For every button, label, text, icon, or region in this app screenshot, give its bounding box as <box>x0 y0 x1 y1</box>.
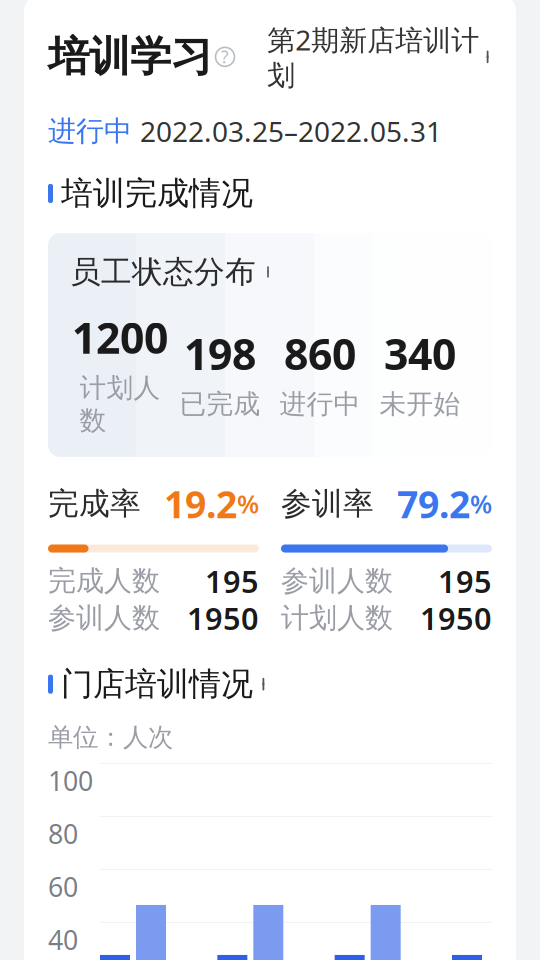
staticText: 完成人数 <box>48 564 160 598</box>
button[interactable]: 第2期新店培训计划 <box>267 21 492 93</box>
staticText: 进行中 <box>48 114 132 148</box>
staticText: 2022.03.25–2022.05.31 <box>140 113 442 150</box>
staticText: 100 <box>48 763 93 798</box>
staticText: 195 <box>438 561 492 601</box>
staticText: 培训完成情况 <box>61 174 253 213</box>
staticText: 完成率 <box>48 485 141 523</box>
staticText: 1950 <box>187 598 259 638</box>
staticText: 19.2 <box>164 479 237 529</box>
staticText: 已完成 <box>179 388 260 421</box>
staticText: 门店培训情况 <box>61 664 253 704</box>
staticText: 1950 <box>420 598 492 638</box>
staticText: 计划人数 <box>281 601 393 635</box>
staticText: 参训人数 <box>48 601 160 635</box>
staticText: 60 <box>48 869 78 904</box>
staticText: 计划人数 <box>79 371 160 437</box>
staticText: 第2期新店培训计划 <box>267 21 479 93</box>
staticText: % <box>237 487 259 520</box>
staticText: 80 <box>48 816 78 851</box>
button[interactable]: 门店培训情况 <box>48 664 268 704</box>
staticText: 参训率 <box>281 485 374 523</box>
staticText: 195 <box>205 561 259 601</box>
staticText: 培训学习 <box>48 31 212 82</box>
staticText: 340 <box>384 325 456 382</box>
staticText: 进行中 <box>279 388 360 421</box>
staticText: 198 <box>184 325 256 382</box>
staticText: 员工状态分布 <box>70 253 256 291</box>
staticText: 单位：人次 <box>48 722 173 753</box>
staticText: ? <box>221 45 229 68</box>
staticText: 参训人数 <box>281 564 393 598</box>
staticText: 860 <box>284 325 356 382</box>
staticText: 1200 <box>72 309 168 365</box>
staticText: 79.2 <box>397 479 470 529</box>
staticText: % <box>470 487 492 520</box>
button[interactable]: 说明 <box>212 44 238 70</box>
staticText: 40 <box>48 922 78 957</box>
button[interactable]: 员工状态分布 <box>48 233 492 457</box>
staticText: 未开始 <box>379 388 460 421</box>
